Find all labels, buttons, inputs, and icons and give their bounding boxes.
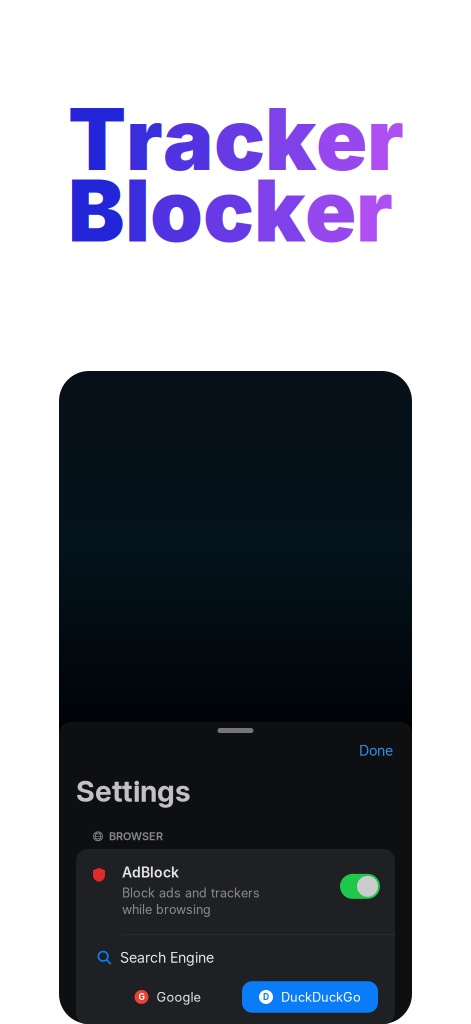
staticText: D bbox=[263, 992, 269, 1002]
staticText: Google bbox=[156, 989, 200, 1005]
staticText: BROWSER bbox=[109, 830, 163, 843]
staticText: T bbox=[68, 88, 126, 190]
staticText: while browsing bbox=[122, 902, 211, 917]
staticText: r bbox=[126, 88, 163, 190]
button[interactable]: G bbox=[120, 981, 214, 1013]
staticText: c bbox=[214, 88, 265, 190]
staticText: l bbox=[125, 159, 150, 262]
staticText: Settings bbox=[76, 774, 191, 809]
staticText: r bbox=[356, 159, 393, 262]
staticText: DuckDuckGo bbox=[281, 989, 361, 1005]
button[interactable]: AdBlock toggle bbox=[340, 849, 380, 899]
staticText: o bbox=[150, 159, 203, 262]
staticText: c bbox=[203, 159, 254, 262]
staticText: a bbox=[163, 88, 214, 190]
staticText: G bbox=[138, 992, 144, 1002]
staticText: e bbox=[316, 88, 367, 190]
staticText: Done bbox=[359, 742, 393, 759]
staticText: B bbox=[68, 159, 125, 262]
staticText: k bbox=[254, 159, 305, 262]
button[interactable]: Done bbox=[349, 738, 395, 763]
staticText: r bbox=[367, 88, 404, 190]
staticText: e bbox=[305, 159, 356, 262]
staticText: AdBlock bbox=[122, 864, 179, 881]
staticText: k bbox=[265, 88, 316, 190]
staticText: Block ads and trackers bbox=[122, 885, 260, 900]
button[interactable]: D bbox=[242, 981, 378, 1013]
staticText: Search Engine bbox=[120, 949, 214, 966]
